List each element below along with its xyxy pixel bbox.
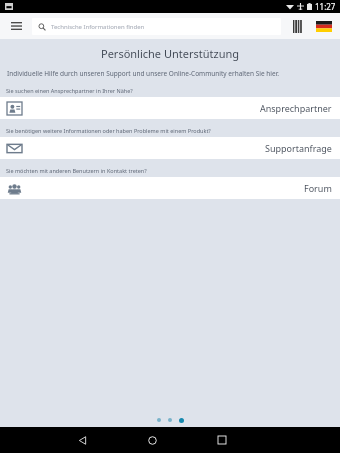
staticText: Technische Informationen finden <box>51 23 145 31</box>
button[interactable]: Seite 1 <box>157 418 161 422</box>
button[interactable]: Zurück <box>69 427 95 453</box>
button[interactable]: Ansprechpartner <box>0 97 340 119</box>
button[interactable]: Technische Informationen finden <box>32 18 281 35</box>
staticText: Individuelle Hilfe durch unseren Support… <box>7 69 280 78</box>
staticText: Forum <box>304 182 332 194</box>
button[interactable]: Seite 3 <box>179 418 184 423</box>
button[interactable]: Startbildschirm <box>139 427 165 453</box>
staticText: Sie möchten mit anderen Benutzern in Kon… <box>6 167 147 174</box>
staticText: Persönliche Unterstützung <box>0 46 340 61</box>
staticText: Ansprechpartner <box>260 102 332 114</box>
button[interactable]: Barcode scannen <box>289 13 311 39</box>
button[interactable]: Seite 2 <box>168 418 172 422</box>
staticText: Supportanfrage <box>265 142 332 154</box>
button[interactable]: Menü <box>0 13 32 39</box>
button[interactable]: Supportanfrage <box>0 137 340 159</box>
staticText: Sie benötigen weitere Informationen oder… <box>6 127 211 134</box>
button[interactable]: Übersicht <box>209 427 235 453</box>
staticText: Sie suchen einen Ansprechpartner in Ihre… <box>6 87 133 94</box>
button[interactable]: Sprache auswählen <box>312 13 336 39</box>
button[interactable]: Forum <box>0 177 340 199</box>
staticText: 11:27 <box>315 1 336 12</box>
